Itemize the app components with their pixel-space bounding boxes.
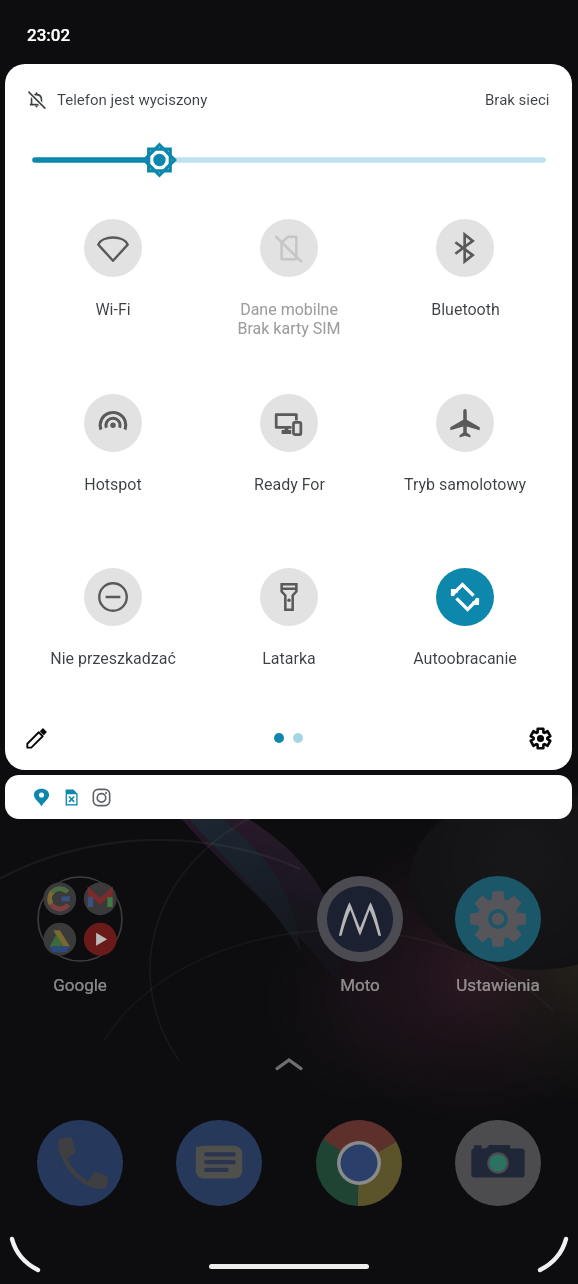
button[interactable]: Ready For [201,394,377,494]
staticText: Dane mobilne [240,300,338,319]
staticText: Brak sieci [485,91,550,109]
staticText: Hotspot [84,475,142,494]
staticText: Tryb samolotowy [404,475,526,494]
button[interactable]: Tryb samolotowy [377,394,553,494]
button[interactable]: Dane mobilne [201,219,377,338]
staticText: Ready For [254,475,325,494]
button[interactable] [37,876,123,962]
staticText: Ustawienia [415,975,578,995]
button[interactable]: Nie przeszkadzać [24,568,201,668]
button[interactable]: Hotspot [24,394,201,494]
staticText: Autoobracanie [413,649,517,668]
button[interactable]: Bluetooth [377,219,553,319]
button[interactable]: Ustawienia [518,716,562,760]
staticText: Google [0,975,163,995]
staticText: 23:02 [27,25,71,45]
staticText: Wi-Fi [95,300,131,319]
staticText: Latarka [262,649,316,668]
button[interactable]: Aplikacja [316,1120,402,1206]
button[interactable]: Moto [317,876,403,962]
button[interactable]: Autoobracanie [377,568,553,668]
button[interactable]: Aplikacja [37,1120,123,1206]
button[interactable]: Aplikacja [455,1120,541,1206]
staticText: Bluetooth [431,300,500,319]
staticText: Telefon jest wyciszony [57,91,208,109]
button[interactable]: Ustawienia [455,876,541,962]
staticText: Brak karty SIM [237,319,341,338]
staticText: Moto [277,975,443,995]
button[interactable]: Latarka [201,568,377,668]
button[interactable]: Aplikacja [176,1120,262,1206]
staticText: Nie przeszkadzać [50,649,176,668]
button[interactable]: Wi-Fi [24,219,201,319]
button[interactable]: Edytuj [15,716,59,760]
